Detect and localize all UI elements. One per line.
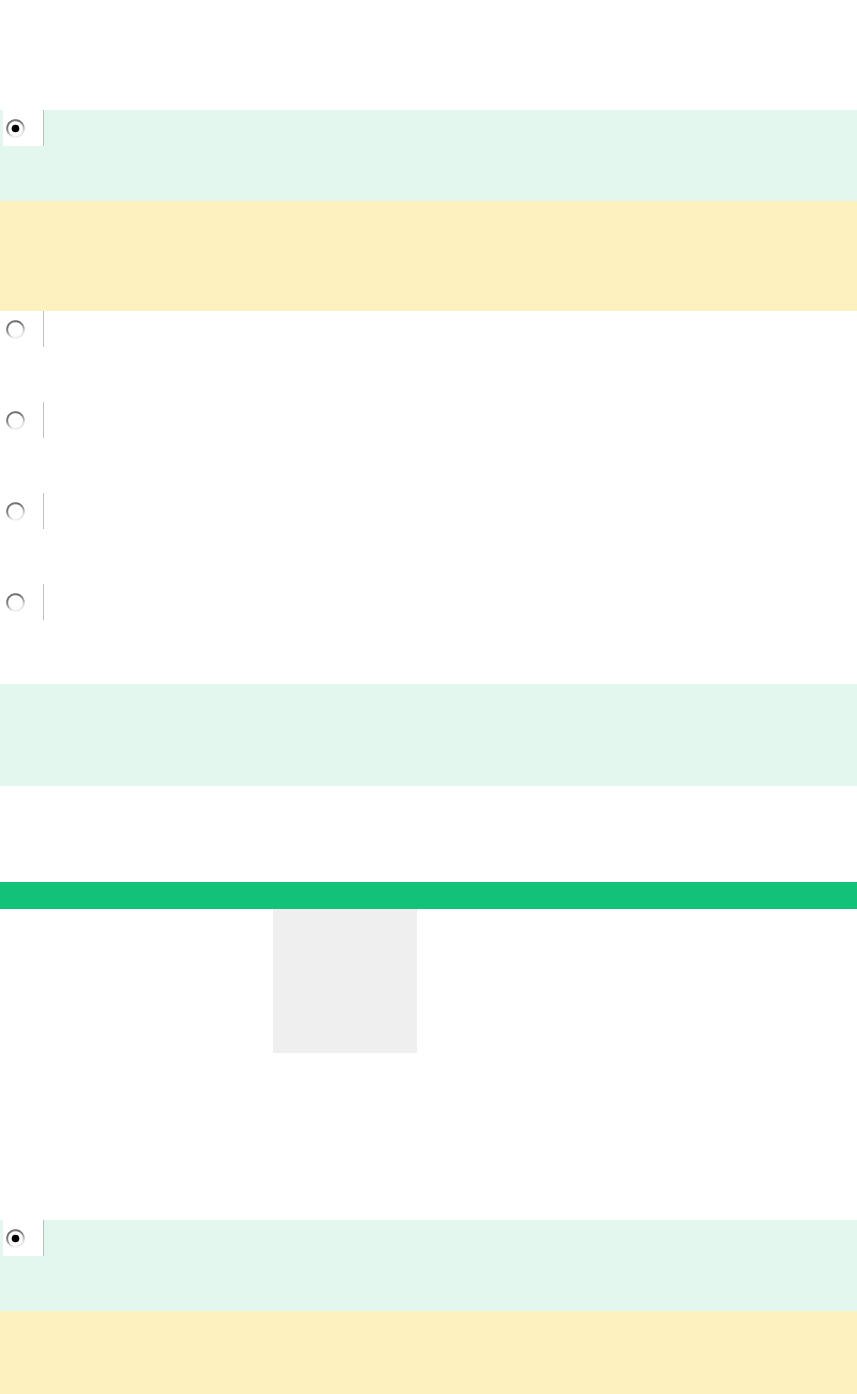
button[interactable]: Fourth answer option — [0, 493, 857, 584]
button[interactable]: Fifth answer option — [0, 584, 857, 675]
other: Second answer option — [0, 311, 44, 347]
other: The first option, which you selected — [0, 110, 44, 146]
other: The selected answer for the next questio… — [0, 1220, 44, 1256]
button[interactable]: Third answer option — [0, 402, 857, 493]
button[interactable]: The first option, which you selected — [0, 110, 857, 201]
other: Fourth answer option — [0, 493, 44, 529]
other: Fifth answer option — [0, 584, 44, 620]
other: Third answer option — [0, 402, 44, 438]
button[interactable]: The selected answer for the next questio… — [0, 1220, 857, 1311]
button[interactable]: Second answer option — [0, 311, 857, 402]
